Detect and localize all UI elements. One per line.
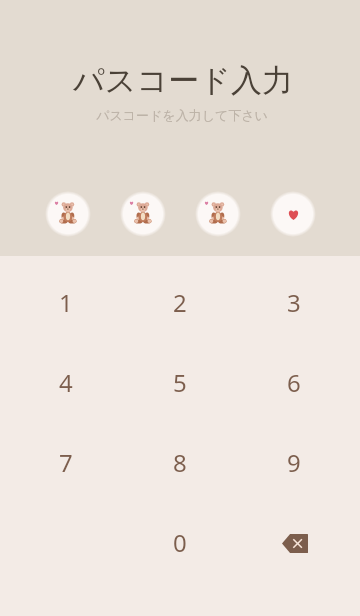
staticText: パスコード入力 [73, 61, 293, 100]
staticText: 3 [287, 286, 301, 319]
button[interactable]: 3 [237, 262, 351, 342]
staticText: 9 [287, 446, 301, 479]
button[interactable]: 4 [9, 342, 123, 422]
button[interactable]: 0 [123, 502, 237, 582]
other: Backspace [272, 520, 316, 564]
staticText: 5 [173, 366, 187, 399]
staticText: 4 [59, 366, 73, 399]
button[interactable]: 5 [123, 342, 237, 422]
staticText: 1 [59, 286, 73, 319]
staticText: 0 [173, 526, 187, 559]
staticText: 8 [173, 446, 187, 479]
button[interactable]: 2 [123, 262, 237, 342]
staticText: 2 [173, 286, 187, 319]
button[interactable]: 1 [9, 262, 123, 342]
button[interactable]: 6 [237, 342, 351, 422]
button[interactable]: 8 [123, 422, 237, 502]
staticText: 6 [287, 366, 301, 399]
staticText: パスコードを入力して下さい [96, 107, 268, 123]
staticText: 7 [59, 446, 73, 479]
button[interactable]: 7 [9, 422, 123, 502]
button[interactable]: 9 [237, 422, 351, 502]
button[interactable]: Backspace [237, 502, 351, 582]
